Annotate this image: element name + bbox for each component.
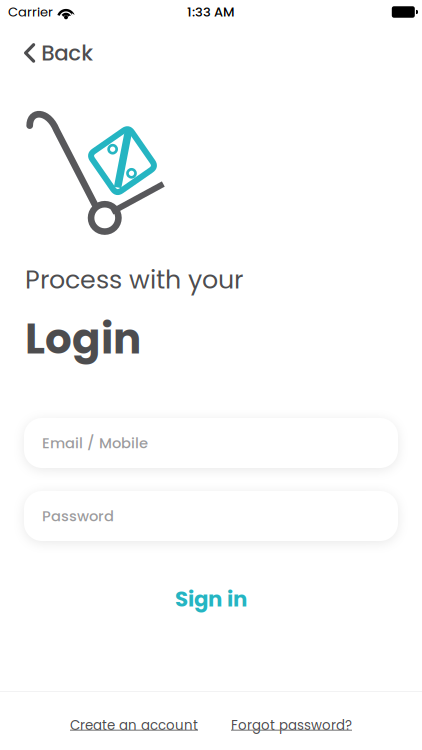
staticText: Password bbox=[42, 506, 114, 526]
staticText: 1:33 AM bbox=[187, 3, 235, 21]
staticText: Create an account bbox=[70, 716, 198, 735]
staticText: Process with your bbox=[25, 262, 243, 297]
button[interactable]: Back bbox=[0, 28, 111, 78]
button[interactable]: Forgot password? bbox=[231, 708, 352, 743]
staticText: Login bbox=[25, 309, 141, 368]
button[interactable]: Create an account bbox=[70, 708, 198, 743]
staticText: Back bbox=[41, 38, 93, 68]
button[interactable]: Sign in bbox=[147, 572, 275, 626]
staticText: Sign in bbox=[175, 584, 247, 614]
staticText: Email / Mobile bbox=[42, 433, 148, 453]
staticText: Forgot password? bbox=[231, 716, 352, 735]
button[interactable]: Email / Mobile bbox=[24, 418, 398, 468]
button[interactable]: Password bbox=[24, 491, 398, 541]
staticText: Carrier bbox=[8, 3, 53, 21]
